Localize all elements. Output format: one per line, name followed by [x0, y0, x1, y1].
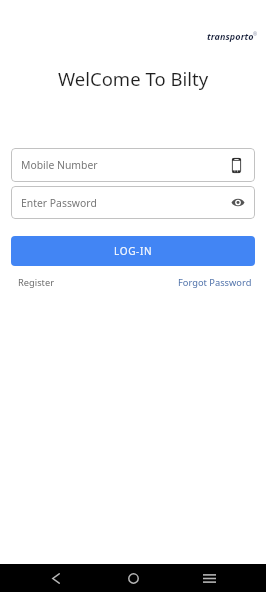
- staticText: ®: [253, 31, 258, 38]
- staticText: Forgot Password: [178, 276, 252, 289]
- button[interactable]: Back: [42, 564, 70, 592]
- button[interactable]: Enter Password: [11, 186, 255, 219]
- staticText: transporto: [207, 30, 254, 42]
- button[interactable]: Forgot Password: [178, 276, 252, 289]
- button[interactable]: Mobile Number: [11, 148, 255, 182]
- staticText: WelCome To Bilty: [0, 66, 266, 91]
- button[interactable]: Recent apps: [195, 564, 223, 592]
- staticText: Mobile Number: [21, 158, 98, 172]
- button[interactable]: Register: [18, 276, 55, 289]
- staticText: Enter Password: [21, 196, 97, 210]
- button[interactable]: Home: [119, 564, 147, 592]
- staticText: Register: [18, 276, 55, 289]
- button[interactable]: LOG-IN: [11, 236, 255, 266]
- staticText: LOG-IN: [114, 244, 153, 258]
